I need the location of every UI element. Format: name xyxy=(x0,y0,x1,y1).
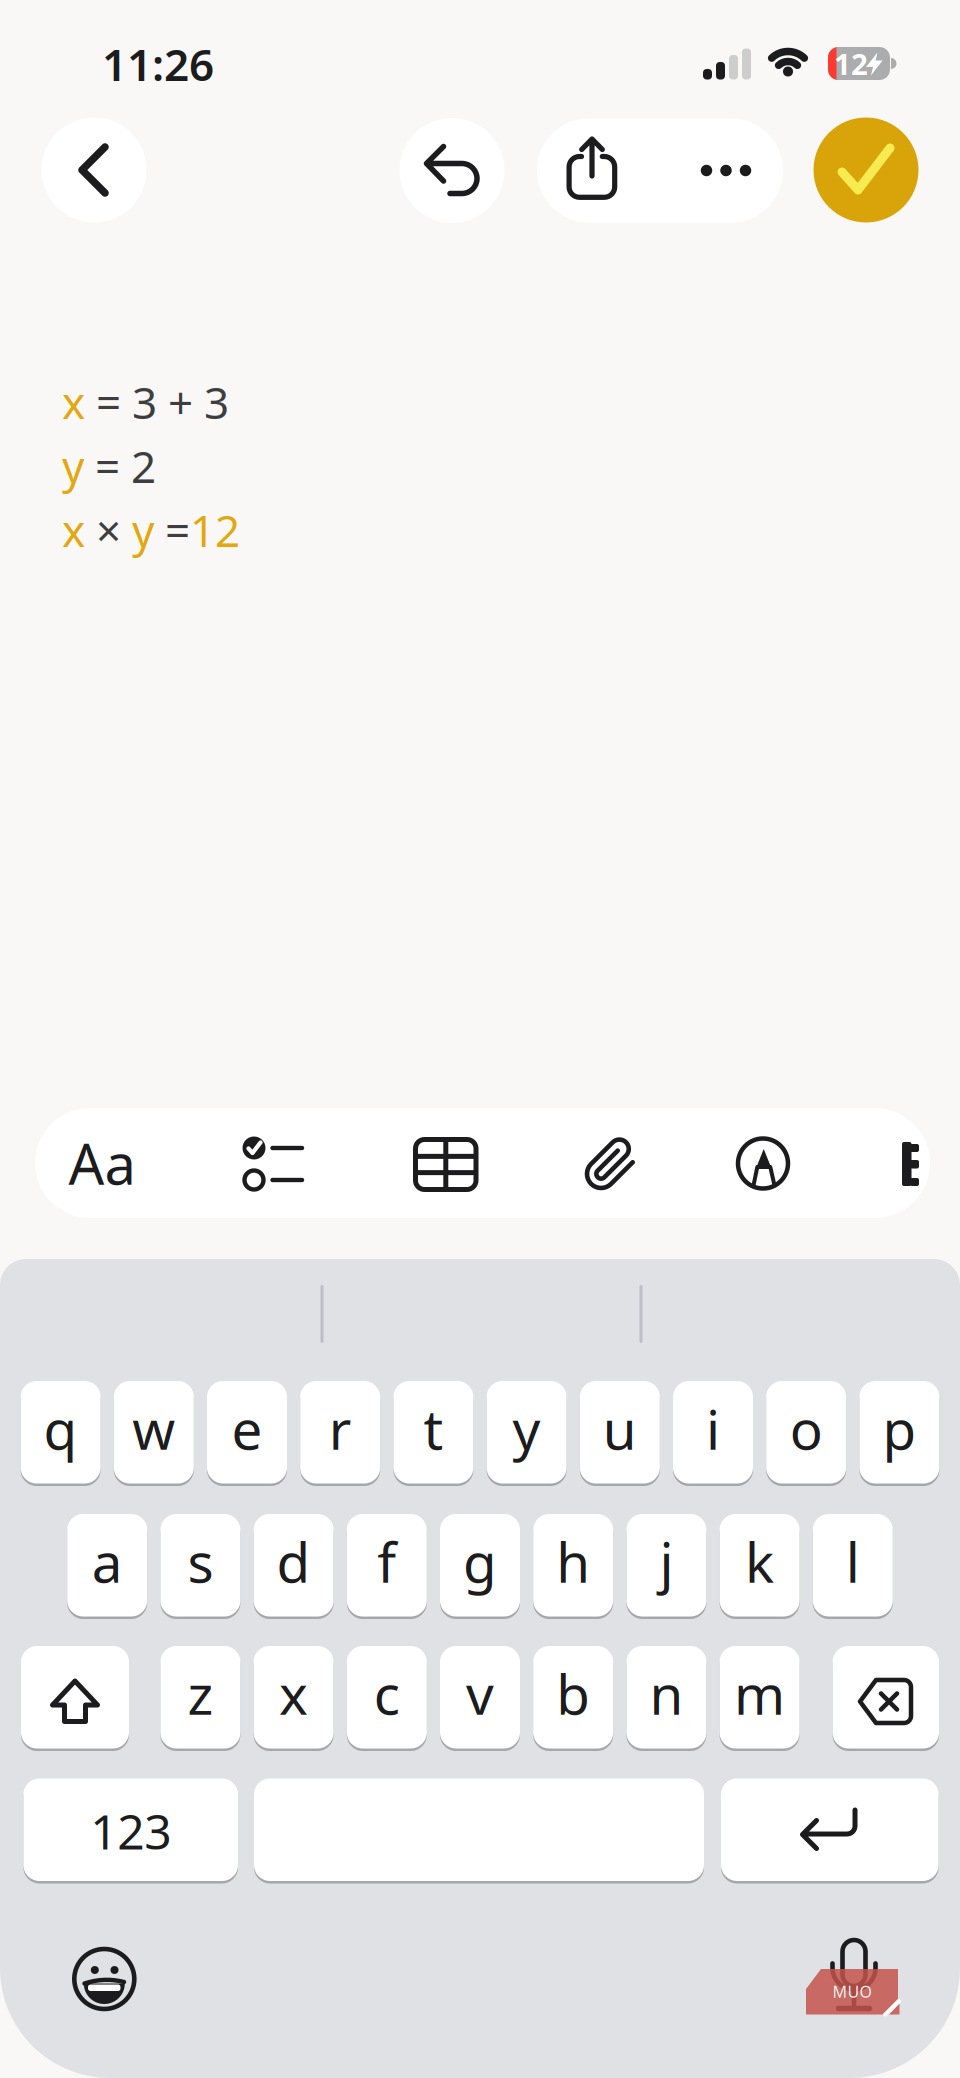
staticText: p xyxy=(882,1392,916,1465)
staticText: e xyxy=(231,1392,262,1465)
staticText: v xyxy=(466,1657,494,1730)
button[interactable]: m xyxy=(720,1646,800,1751)
button[interactable] xyxy=(664,118,787,222)
button[interactable]: a xyxy=(67,1514,147,1619)
button[interactable]: j xyxy=(626,1514,706,1619)
button[interactable] xyxy=(708,1108,818,1218)
staticText: f xyxy=(377,1525,396,1598)
button[interactable] xyxy=(832,1646,939,1751)
button[interactable]: c xyxy=(347,1646,427,1751)
button[interactable]: d xyxy=(254,1514,334,1619)
button[interactable]: r xyxy=(300,1381,380,1486)
staticText: = xyxy=(154,501,190,559)
button[interactable]: b xyxy=(533,1646,613,1751)
staticText: u xyxy=(603,1392,637,1465)
staticText: c xyxy=(374,1657,400,1730)
button[interactable]: g xyxy=(440,1514,520,1619)
button[interactable]: o xyxy=(766,1381,846,1486)
staticText: 12 xyxy=(190,501,240,559)
staticText: x xyxy=(62,373,85,431)
button[interactable]: v xyxy=(440,1646,520,1751)
button[interactable] xyxy=(41,117,146,222)
staticText: n xyxy=(649,1657,683,1730)
staticText: z xyxy=(187,1657,213,1730)
staticText: x xyxy=(279,1657,308,1730)
staticText: g xyxy=(463,1525,497,1598)
button[interactable] xyxy=(390,1108,500,1218)
button[interactable] xyxy=(721,1778,939,1883)
button[interactable] xyxy=(215,1108,325,1218)
staticText: s xyxy=(187,1525,213,1598)
staticText: × xyxy=(85,501,132,559)
button[interactable]: h xyxy=(533,1514,613,1619)
staticText: Aa xyxy=(68,1126,135,1200)
button[interactable]: f xyxy=(347,1514,427,1619)
staticText: y xyxy=(513,1392,541,1465)
button[interactable]: e xyxy=(207,1381,287,1486)
button[interactable]: i xyxy=(673,1381,753,1486)
staticText: x xyxy=(62,501,85,559)
button[interactable]: l xyxy=(813,1514,893,1619)
button[interactable]: Aa xyxy=(47,1108,157,1218)
staticText: j xyxy=(659,1525,673,1598)
staticText: d xyxy=(277,1525,311,1598)
button[interactable] xyxy=(21,1646,129,1751)
button[interactable]: s xyxy=(160,1514,240,1619)
button[interactable] xyxy=(254,1778,704,1883)
button[interactable]: y xyxy=(487,1381,567,1486)
button[interactable]: n xyxy=(626,1646,706,1751)
button[interactable]: z xyxy=(160,1646,240,1751)
button[interactable]: x xyxy=(254,1646,334,1751)
staticText: r xyxy=(329,1392,352,1465)
button[interactable]: q xyxy=(21,1381,101,1486)
staticText: m xyxy=(734,1657,785,1730)
button[interactable] xyxy=(556,1108,666,1218)
staticText: y xyxy=(132,501,154,559)
button[interactable] xyxy=(537,118,660,222)
staticText: b xyxy=(556,1657,590,1730)
staticText: y xyxy=(62,437,84,495)
staticText: = 3 + 3 xyxy=(85,373,229,431)
staticText: a xyxy=(92,1525,123,1598)
button[interactable] xyxy=(49,1924,159,2034)
button[interactable]: w xyxy=(114,1381,194,1486)
button[interactable]: p xyxy=(859,1381,939,1486)
button[interactable]: u xyxy=(580,1381,660,1486)
staticText: h xyxy=(556,1525,590,1598)
staticText: l xyxy=(846,1525,860,1598)
staticText: k xyxy=(745,1525,774,1598)
staticText: 12 xyxy=(834,44,868,83)
staticText: w xyxy=(132,1392,175,1465)
staticText: 11:26 xyxy=(102,35,214,93)
staticText: MUO xyxy=(832,1981,871,2002)
staticText: o xyxy=(790,1392,823,1465)
button[interactable] xyxy=(883,1108,953,1218)
staticText: 123 xyxy=(90,1799,171,1863)
staticText: = 2 xyxy=(84,437,156,495)
staticText: i xyxy=(706,1392,720,1465)
button[interactable]: t xyxy=(393,1381,473,1486)
staticText: t xyxy=(423,1392,443,1465)
button[interactable] xyxy=(799,1922,909,2032)
button[interactable] xyxy=(399,118,504,223)
button[interactable] xyxy=(813,117,918,222)
staticText: q xyxy=(44,1392,78,1465)
button[interactable]: 123 xyxy=(23,1778,238,1883)
button[interactable]: k xyxy=(720,1514,800,1619)
